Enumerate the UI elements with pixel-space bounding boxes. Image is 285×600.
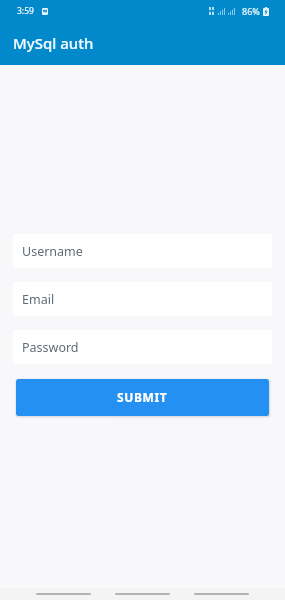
staticText: 3:59 xyxy=(17,5,34,17)
staticText: 86% xyxy=(242,5,260,17)
button[interactable]: Username xyxy=(13,234,272,268)
button[interactable]: Home xyxy=(115,588,170,600)
staticText: Email xyxy=(22,291,55,308)
button[interactable]: Password xyxy=(13,330,272,364)
button[interactable]: SUBMIT xyxy=(16,379,269,416)
staticText: SUBMIT xyxy=(117,389,168,405)
staticText: Password xyxy=(22,339,79,356)
staticText: Username xyxy=(22,243,83,260)
button[interactable]: Recents xyxy=(36,588,91,600)
button[interactable]: Email xyxy=(13,282,272,316)
staticText: MySql auth xyxy=(13,33,94,53)
button[interactable]: Back xyxy=(194,588,249,600)
